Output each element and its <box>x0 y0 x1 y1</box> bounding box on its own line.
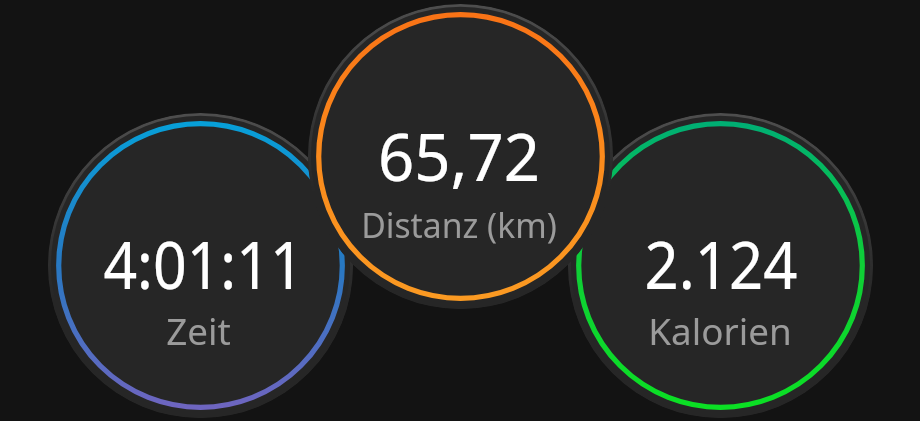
staticText: 2.124 <box>644 219 798 308</box>
button[interactable]: Kalorien 2.124 <box>568 113 873 418</box>
button[interactable]: Distanz (km) 65,72 <box>308 4 613 309</box>
staticText: Zeit <box>166 306 231 356</box>
staticText: Kalorien <box>648 306 792 356</box>
staticText: 4:01:11 <box>103 219 304 308</box>
button[interactable]: Zeit 4:01:11 <box>48 113 353 418</box>
staticText: Distanz (km) <box>361 202 557 248</box>
staticText: 65,72 <box>377 111 541 200</box>
